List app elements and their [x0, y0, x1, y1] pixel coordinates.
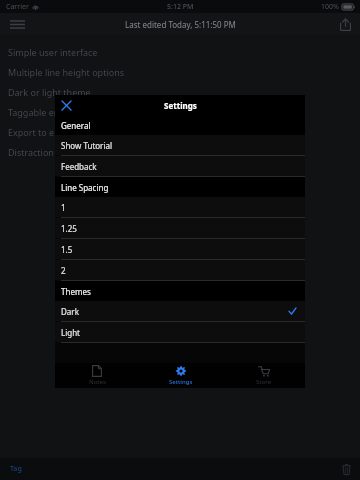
- staticText: Last edited Today, 5:11:50 PM: [125, 19, 236, 30]
- staticText: Dark: [61, 306, 79, 317]
- button[interactable]: Dark: [55, 301, 305, 321]
- staticText: 1: [61, 202, 66, 213]
- button[interactable]: Tag: [4, 461, 28, 477]
- button[interactable]: Feedback: [55, 156, 305, 176]
- staticText: Settings: [164, 100, 197, 111]
- button[interactable]: General: [55, 115, 305, 135]
- button[interactable]: Store: [222, 363, 305, 388]
- staticText: Multiple line height options: [8, 66, 125, 78]
- staticText: Light: [61, 327, 81, 338]
- staticText: 1.5: [61, 244, 73, 255]
- button[interactable]: Notes: [55, 363, 139, 388]
- button[interactable]: 1: [55, 197, 305, 217]
- staticText: General: [61, 120, 91, 131]
- button[interactable]: Delete: [332, 458, 360, 480]
- staticText: Themes: [61, 286, 91, 297]
- button[interactable]: Settings: [139, 363, 222, 388]
- staticText: Tag: [10, 464, 22, 474]
- staticText: Carrier: [6, 2, 29, 12]
- staticText: Export to email: [8, 126, 73, 138]
- staticText: Store: [256, 378, 272, 386]
- staticText: Simple user interface: [8, 46, 98, 58]
- button[interactable]: 1.5: [55, 239, 305, 259]
- button[interactable]: 1.25: [55, 218, 305, 238]
- staticText: Show Tutorial: [61, 140, 113, 151]
- button[interactable]: Show Tutorial: [55, 135, 305, 155]
- staticText: 5:12 PM: [167, 2, 194, 12]
- staticText: Line Spacing: [61, 182, 109, 193]
- staticText: 100%: [321, 2, 339, 12]
- staticText: Distraction free: [8, 146, 74, 158]
- button[interactable]: 2: [55, 260, 305, 280]
- staticText: 2: [61, 265, 66, 276]
- button[interactable]: Menu: [0, 13, 34, 35]
- button[interactable]: Light: [55, 322, 305, 342]
- button[interactable]: Line Spacing: [55, 177, 305, 197]
- staticText: Feedback: [61, 161, 97, 172]
- staticText: Settings: [169, 378, 193, 386]
- button[interactable]: Themes: [55, 281, 305, 301]
- staticText: 1.25: [61, 223, 77, 234]
- staticText: Notes: [89, 378, 106, 386]
- staticText: Dark or light theme: [8, 86, 91, 98]
- button[interactable]: Share: [330, 13, 360, 35]
- staticText: Taggable entries: [8, 106, 79, 118]
- button[interactable]: Close: [55, 95, 77, 115]
